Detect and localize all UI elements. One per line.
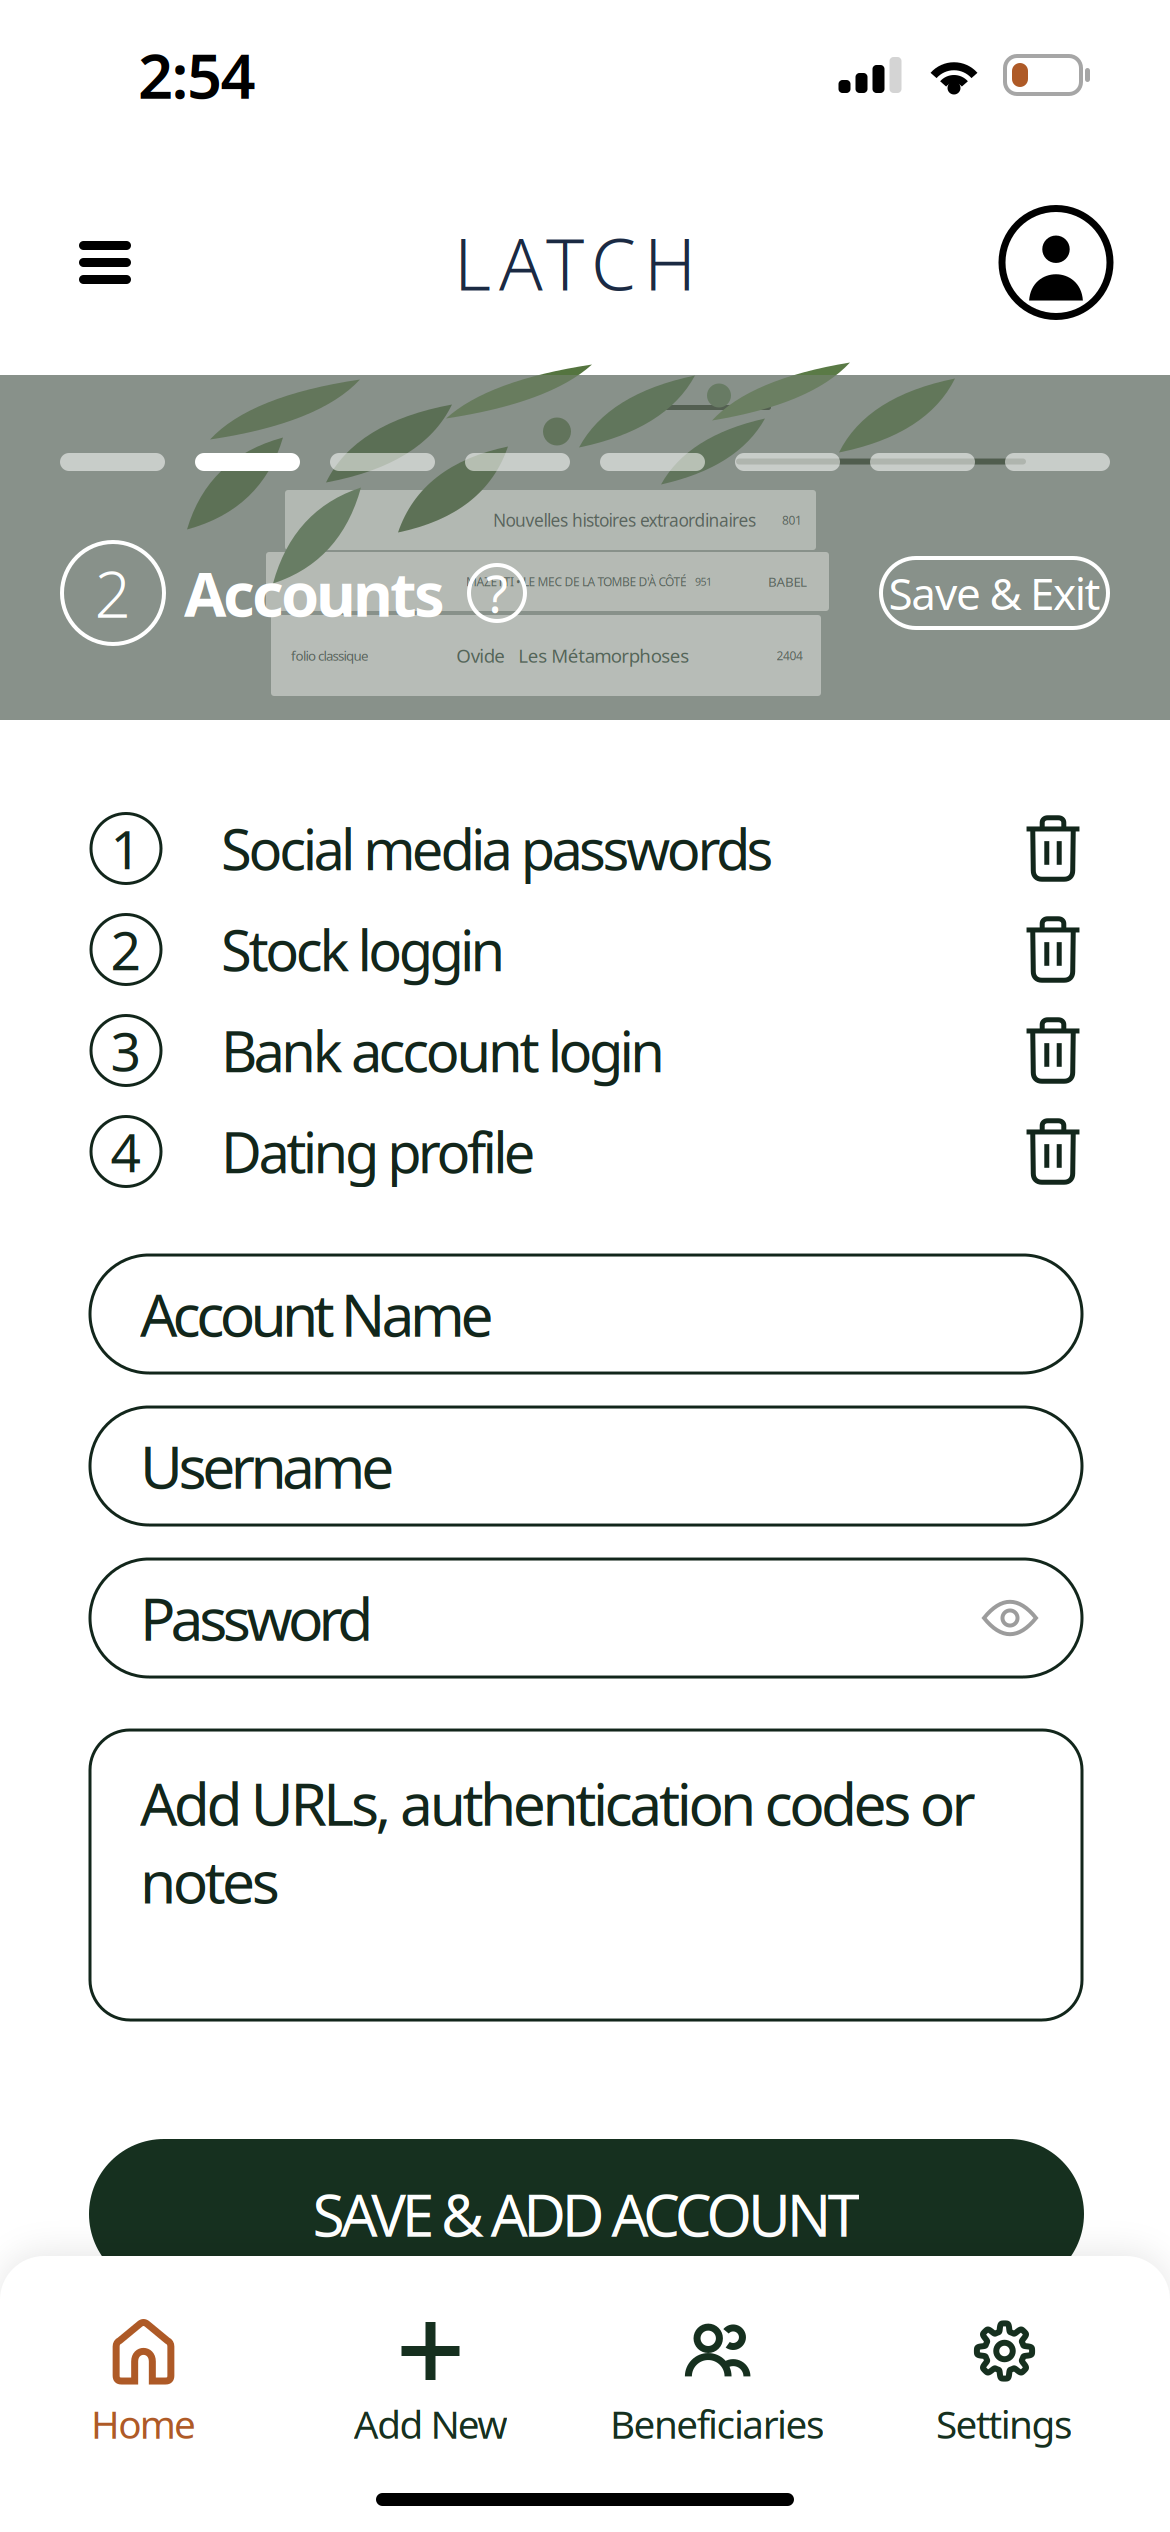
button[interactable]: Account Name (90, 1255, 1082, 1373)
staticText: Password (140, 1579, 373, 1657)
staticText: 1 (110, 813, 141, 884)
button[interactable]: Password (90, 1559, 1082, 1677)
staticText: 2404 (776, 647, 803, 663)
staticText: 2 (94, 550, 131, 635)
staticText: 3 (110, 1015, 141, 1086)
staticText: 801 (782, 512, 802, 528)
button[interactable]: Username (90, 1407, 1082, 1525)
button[interactable]: Home (0, 2320, 287, 2449)
staticText: 2 (110, 914, 141, 985)
staticText: Ovide Les Métamorphoses (456, 643, 689, 668)
button[interactable]: Delete Bank account login (1014, 1006, 1092, 1094)
staticText: Username (140, 1427, 394, 1505)
staticText: Stock loggin (221, 912, 506, 987)
staticText: Account Name (140, 1275, 494, 1353)
staticText: Dating profile (221, 1114, 536, 1189)
staticText: Add New (354, 2398, 507, 2449)
staticText: Social media passwords (221, 811, 774, 886)
button[interactable]: Menu (60, 217, 150, 307)
staticText: folio classique (291, 647, 369, 664)
button[interactable]: Save & Exit (881, 558, 1108, 628)
staticText: MAZETTI • LE MEC DE LA TOMBE D'À CÔTÉ (466, 573, 687, 589)
button[interactable]: Add New (287, 2320, 574, 2449)
staticText: 4 (110, 1116, 141, 1187)
staticText: 951 (695, 574, 712, 589)
button[interactable]: Delete Social media passwords (1014, 804, 1092, 892)
staticText: LATCH (454, 215, 696, 310)
button[interactable]: Beneficiaries (574, 2320, 861, 2449)
staticText: Home (91, 2398, 196, 2449)
staticText: Nouvelles histoires extraordinaires (493, 508, 756, 531)
button[interactable]: Add URLs, authentication codes or notes (90, 1730, 1082, 2020)
button[interactable]: Delete Dating profile (1014, 1107, 1092, 1195)
staticText: BABEL (768, 573, 807, 590)
button[interactable]: Profile (1000, 206, 1112, 318)
staticText: Bank account login (221, 1013, 665, 1088)
staticText: Accounts (184, 552, 445, 634)
button[interactable]: SAVE & ADD ACCOUNT (89, 2139, 1084, 2289)
staticText: Save & Exit (888, 564, 1100, 622)
staticText: Add URLs, authentication codes or notes (140, 1764, 975, 1920)
staticText: 2:54 (138, 34, 255, 116)
staticText: SAVE & ADD ACCOUNT (312, 2175, 860, 2253)
button[interactable]: Settings (861, 2320, 1148, 2449)
staticText: ? (486, 559, 508, 627)
staticText: Settings (936, 2398, 1073, 2449)
staticText: Beneficiaries (610, 2398, 825, 2449)
button[interactable]: Delete Stock loggin (1014, 905, 1092, 993)
